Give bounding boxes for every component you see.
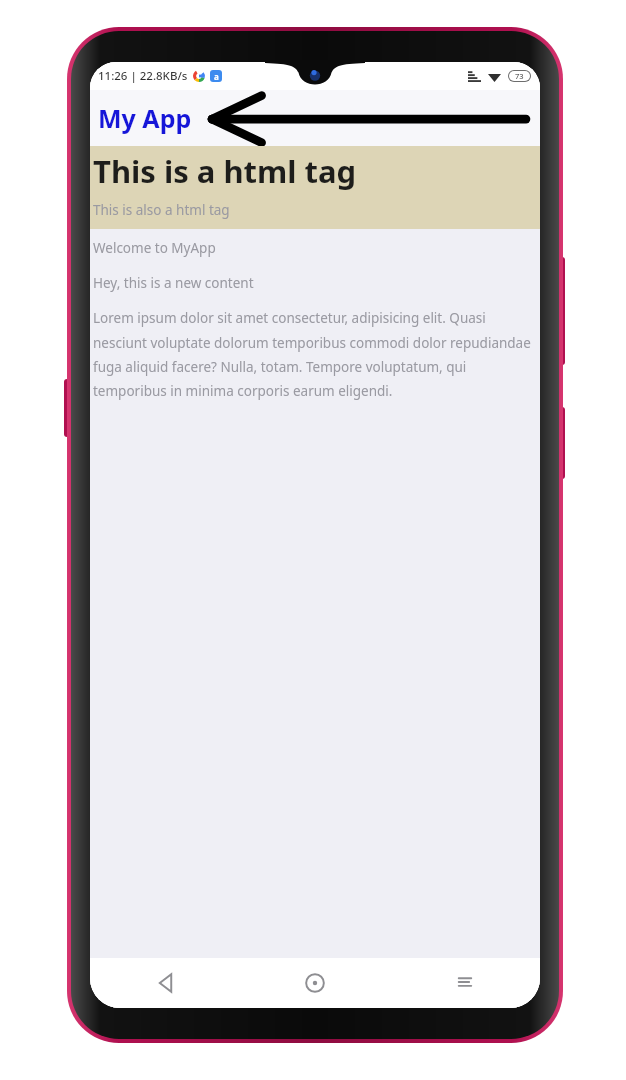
staticText: a [214, 71, 219, 82]
staticText: My App [98, 101, 192, 135]
button[interactable]: My App [97, 98, 193, 138]
staticText: Welcome to MyApp [93, 239, 216, 257]
staticText: 73 [515, 71, 524, 81]
staticText: 11:26 | 22.8KB/s [98, 68, 188, 84]
staticText: This is also a html tag [93, 201, 230, 219]
button[interactable]: Recent apps [390, 958, 540, 1008]
staticText: Hey, this is a new content [93, 274, 254, 292]
button[interactable]: Home [240, 958, 390, 1008]
other: Back arrow annotation [208, 90, 528, 146]
staticText: Lorem ipsum dolor sit amet consectetur, … [93, 309, 540, 400]
button[interactable]: Back [90, 958, 240, 1008]
staticText: This is a html tag [93, 150, 357, 192]
